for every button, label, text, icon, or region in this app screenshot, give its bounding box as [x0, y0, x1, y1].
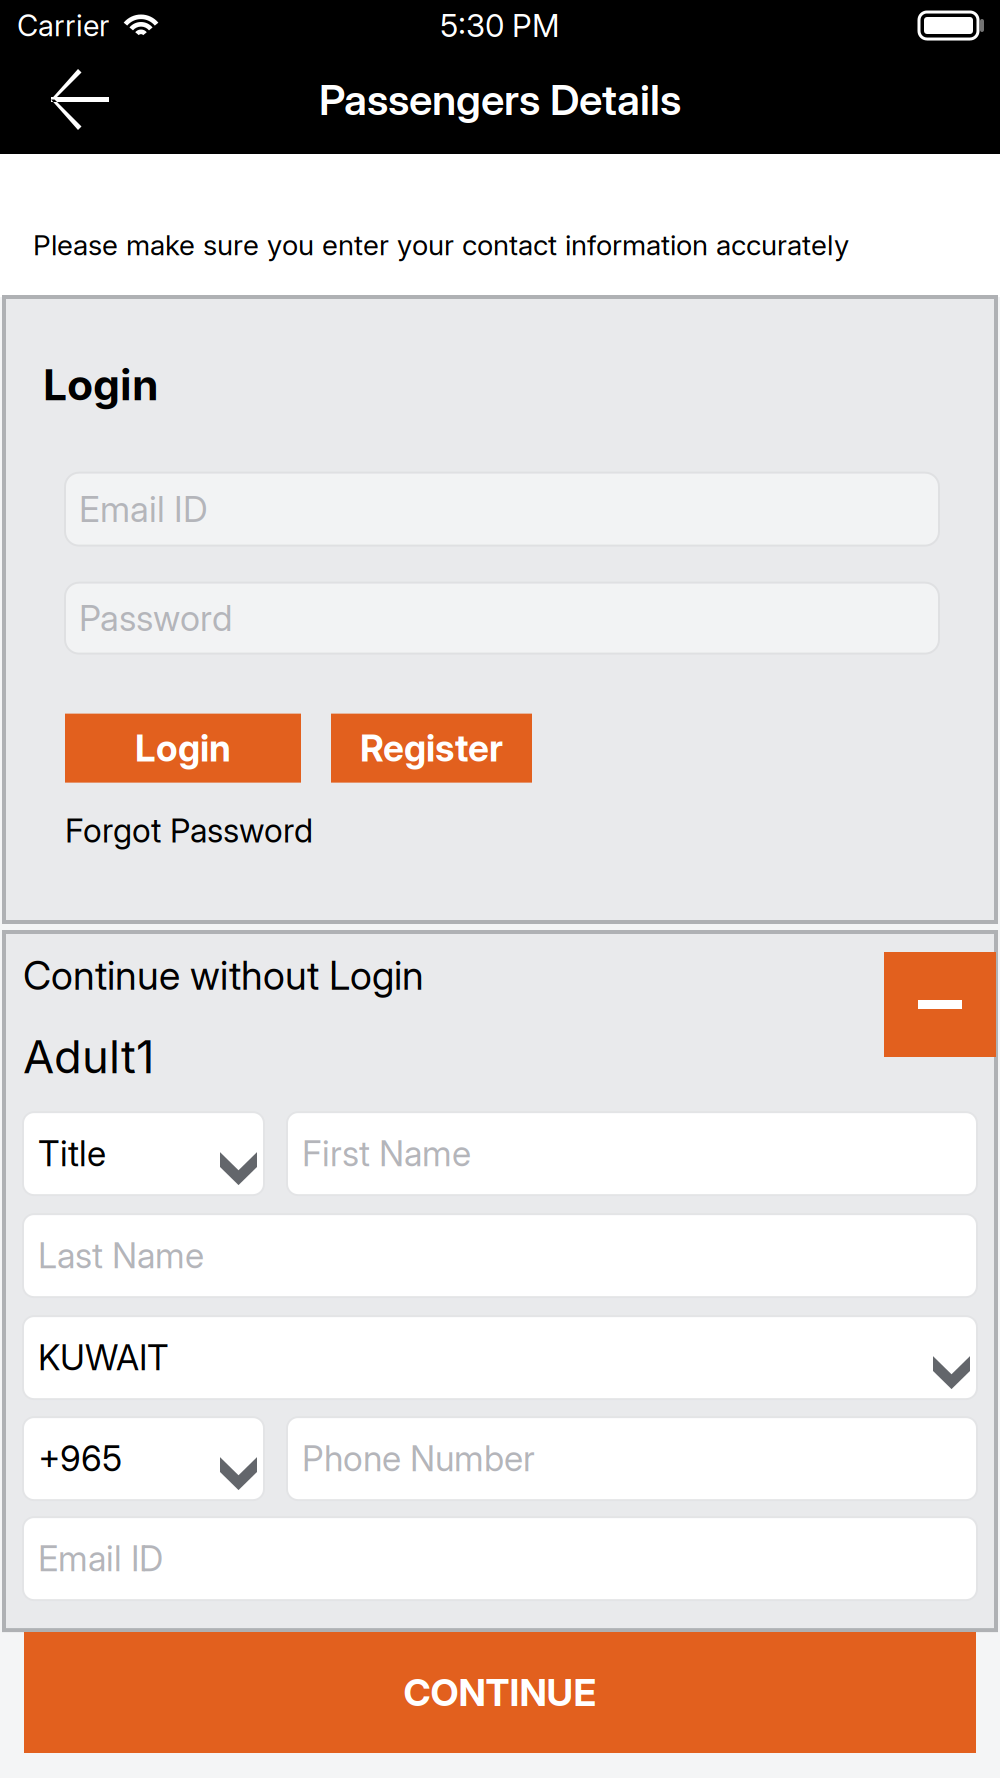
staticText: CONTINUE — [403, 1670, 596, 1715]
button[interactable]: CONTINUE — [24, 1632, 976, 1753]
staticText: Title — [38, 1133, 106, 1174]
staticText: KUWAIT — [38, 1337, 169, 1378]
button[interactable]: Register — [331, 714, 532, 783]
staticText: Please make sure you enter your contact … — [33, 228, 849, 262]
staticText: Login — [43, 359, 159, 411]
button[interactable]: Collapse passenger — [884, 952, 996, 1057]
staticText: First Name — [302, 1133, 471, 1174]
staticText: Register — [360, 726, 503, 770]
staticText: Passengers Details — [319, 74, 681, 125]
staticText: Adult1 — [23, 1029, 154, 1084]
staticText: Password — [79, 597, 232, 640]
staticText: Email ID — [79, 488, 208, 531]
button[interactable]: Back — [0, 48, 133, 151]
staticText: Login — [135, 726, 231, 770]
staticText: +965 — [38, 1438, 122, 1479]
staticText: Carrier — [17, 8, 109, 43]
staticText: Continue without Login — [23, 952, 424, 999]
staticText: Last Name — [38, 1235, 204, 1276]
staticText: Forgot Password — [65, 811, 313, 850]
button[interactable]: Forgot Password — [4, 805, 996, 857]
staticText: Phone Number — [302, 1438, 535, 1479]
staticText: Email ID — [38, 1538, 163, 1579]
button[interactable]: Login — [65, 714, 301, 783]
staticText: 5:30 PM — [440, 6, 560, 44]
